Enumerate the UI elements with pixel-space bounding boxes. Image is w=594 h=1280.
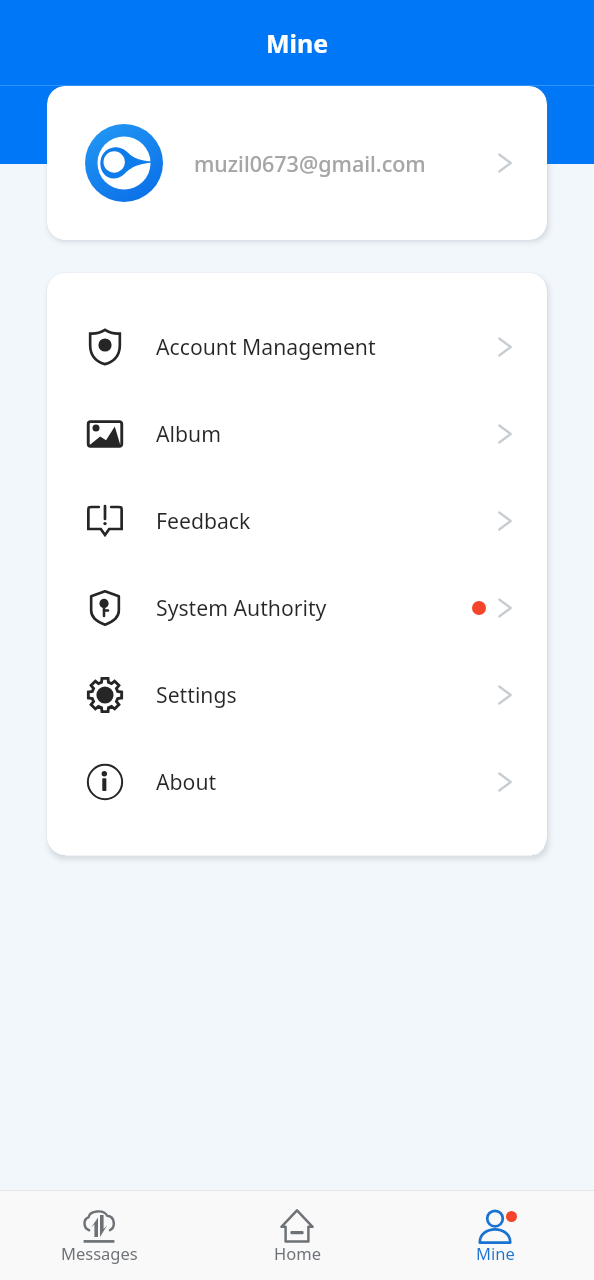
staticText: Account Management (156, 332, 376, 361)
staticText: muzil0673@gmail.com (194, 149, 426, 178)
staticText: Mine (476, 1242, 515, 1264)
staticText: Messages (61, 1242, 138, 1264)
staticText: Feedback (156, 506, 251, 535)
button[interactable]: Account Management (47, 303, 547, 390)
staticText: System Authority (156, 593, 327, 622)
staticText: Mine (266, 26, 329, 60)
button[interactable]: Feedback (47, 477, 547, 564)
button[interactable]: About (47, 738, 547, 825)
button[interactable]: muzil0673@gmail.com (47, 86, 547, 240)
staticText: Home (274, 1242, 321, 1264)
button[interactable]: Home (198, 1194, 396, 1278)
button[interactable]: Album (47, 390, 547, 477)
staticText: About (156, 767, 217, 796)
button[interactable]: Mine (396, 1194, 594, 1278)
staticText: Settings (156, 680, 237, 709)
staticText: Album (156, 419, 221, 448)
button[interactable]: Settings (47, 651, 547, 738)
button[interactable]: System Authority (47, 564, 547, 651)
button[interactable]: Messages (0, 1194, 198, 1278)
